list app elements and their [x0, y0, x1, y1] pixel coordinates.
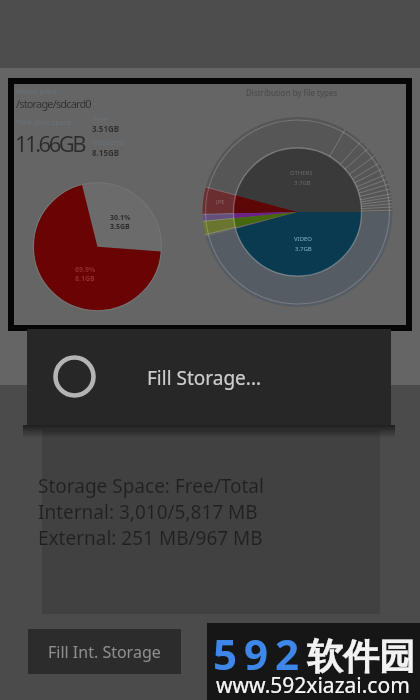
staticText: 3.7GB	[295, 245, 312, 253]
staticText: 3.5GB	[110, 222, 130, 232]
staticText: 11.66GB	[15, 128, 85, 158]
staticText: Fill Int. Storage	[48, 641, 161, 663]
staticText: Mount point	[16, 87, 57, 97]
staticText: 30.1%	[110, 213, 131, 223]
staticText: Distribution by file types	[246, 87, 338, 98]
staticText: 8.15GB	[92, 147, 120, 158]
staticText: 592	[213, 625, 307, 682]
staticText: VIDEO	[294, 235, 313, 243]
staticText: Internal: 3,010/5,817 MB	[38, 499, 258, 525]
staticText: Free	[93, 115, 108, 125]
other: Loading	[53, 355, 96, 398]
staticText: 3.51GB	[92, 123, 120, 134]
button[interactable]: Fill Int. Storage	[28, 629, 181, 674]
staticText: www.592xiazai.com	[216, 671, 410, 700]
staticText: Fill Storage...	[147, 365, 262, 391]
staticText: External: 251 MB/967 MB	[38, 525, 263, 551]
staticText: /storage/sdcard0	[16, 96, 91, 111]
staticText: Storage Space: Free/Total	[38, 473, 264, 499]
staticText: Total drive space	[16, 118, 71, 128]
staticText: OTHERS	[290, 169, 313, 177]
staticText: 69.9%	[75, 265, 96, 275]
staticText: JPE	[216, 198, 225, 206]
staticText: 8.1GB	[75, 274, 95, 284]
staticText: Occupied	[93, 138, 124, 148]
staticText: 3.7GB	[294, 179, 311, 187]
staticText: 软件园	[307, 634, 415, 679]
